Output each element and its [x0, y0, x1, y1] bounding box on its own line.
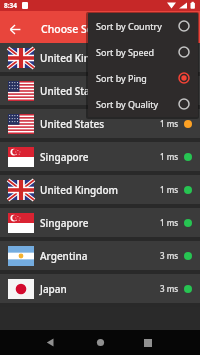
button[interactable]: Singapore [0, 208, 200, 237]
button[interactable]: Japan [0, 274, 200, 303]
button[interactable]: United States [0, 109, 200, 138]
staticText: Sort by Quality [96, 98, 159, 110]
staticText: 1 ms [160, 217, 179, 228]
staticText: 1 ms [160, 184, 179, 195]
button[interactable]: Singapore [0, 142, 200, 171]
staticText: 1 ms [160, 52, 179, 63]
button[interactable]: United Kingdom [0, 43, 200, 72]
button[interactable]: Sort by Speed [88, 39, 198, 65]
staticText: United Kingdom [40, 51, 118, 65]
button[interactable] [5, 19, 26, 40]
button[interactable]: Argentina [0, 241, 200, 270]
button[interactable]: Sort by Ping [88, 65, 198, 91]
button[interactable] [136, 330, 160, 355]
staticText: Singapore [40, 216, 89, 230]
button[interactable]: United States [0, 76, 200, 105]
staticText: 3 ms [160, 250, 179, 261]
staticText: United States [40, 117, 105, 131]
staticText: Singapore [40, 150, 89, 164]
staticText: Argentina [40, 249, 88, 263]
button[interactable]: United Kingdom [0, 175, 200, 204]
button[interactable]: Sort by Country [88, 13, 198, 39]
staticText: 3 ms [160, 283, 179, 294]
staticText: 8:34 [4, 1, 17, 10]
staticText: 1 ms [160, 151, 179, 162]
button[interactable] [38, 330, 62, 355]
staticText: Japan [40, 282, 67, 296]
button[interactable]: Sort by Quality [88, 91, 198, 117]
staticText: Sort by Country [96, 20, 162, 32]
staticText: Choose Server [41, 22, 114, 36]
staticText: 1 ms [160, 118, 179, 129]
staticText: United Kingdom [40, 183, 118, 197]
staticText: Sort by Ping [96, 72, 147, 84]
staticText: Sort by Speed [96, 46, 155, 58]
button[interactable] [88, 330, 112, 355]
staticText: United States [40, 84, 105, 98]
